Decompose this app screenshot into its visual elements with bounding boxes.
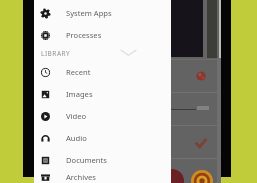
staticText: Documents [66,155,107,165]
button[interactable]: Images [34,83,171,105]
staticText: System Apps [66,8,112,18]
staticText: Audio [66,133,87,143]
button[interactable]: Video [34,105,171,127]
other: Collapse library [120,48,137,58]
staticText: Archives [66,172,96,182]
button[interactable]: Processes [34,24,171,46]
button[interactable]: Recent [34,61,171,83]
button[interactable]: System Apps [34,2,171,24]
button[interactable]: Audio [34,127,171,149]
button[interactable]: Documents [34,149,171,171]
staticText: LIBRARY [41,49,71,58]
staticText: Video [66,111,87,121]
button[interactable]: Archives [34,171,171,183]
staticText: Images [66,89,93,99]
staticText: Processes [66,30,102,40]
staticText: Recent [66,67,91,77]
button[interactable]: LIBRARY [34,46,171,61]
